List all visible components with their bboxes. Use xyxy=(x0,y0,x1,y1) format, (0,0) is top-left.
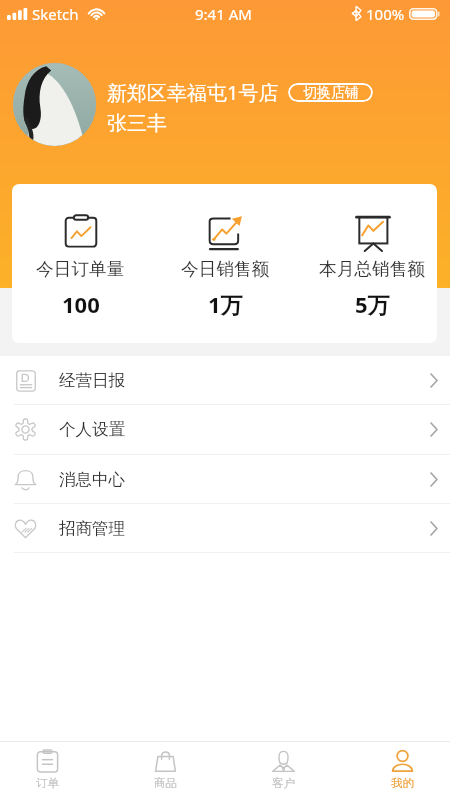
staticText: 100 xyxy=(62,289,100,319)
staticText: 5万 xyxy=(355,289,390,319)
staticText: 订单 xyxy=(36,776,59,790)
button[interactable]: 商品 xyxy=(106,742,224,800)
button[interactable]: 消息中心 xyxy=(0,455,450,504)
button[interactable]: 切换店铺 xyxy=(288,83,373,102)
staticText: 经营日报 xyxy=(59,370,125,391)
button[interactable]: 订单 xyxy=(0,742,106,800)
staticText: 今日订单量 xyxy=(36,258,125,280)
staticText: 客户 xyxy=(272,776,295,790)
staticText: Sketch xyxy=(32,4,79,24)
staticText: 本月总销售额 xyxy=(319,258,426,280)
button[interactable]: Profile photo xyxy=(13,63,96,146)
staticText: 新郑区幸福屯1号店 xyxy=(107,79,279,106)
button[interactable]: 我的 xyxy=(343,742,450,800)
button[interactable]: 个人设置 xyxy=(0,405,450,455)
button[interactable]: 本月总销售额 xyxy=(306,184,437,343)
button[interactable]: 今日订单量 xyxy=(14,184,147,343)
staticText: 个人设置 xyxy=(59,419,125,440)
staticText: 今日销售额 xyxy=(181,258,270,280)
button[interactable]: 客户 xyxy=(224,742,343,800)
button[interactable]: 招商管理 xyxy=(0,504,450,553)
staticText: 1万 xyxy=(208,289,243,319)
staticText: 消息中心 xyxy=(59,469,125,490)
staticText: 9:41 AM xyxy=(195,4,252,24)
staticText: 我的 xyxy=(391,776,414,790)
staticText: 张三丰 xyxy=(107,111,167,136)
staticText: 100% xyxy=(366,4,405,24)
staticText: 招商管理 xyxy=(59,518,125,539)
staticText: 切换店铺 xyxy=(303,84,359,102)
button[interactable]: 今日销售额 xyxy=(159,184,292,343)
button[interactable]: 经营日报 xyxy=(0,356,450,405)
staticText: 商品 xyxy=(154,776,177,790)
